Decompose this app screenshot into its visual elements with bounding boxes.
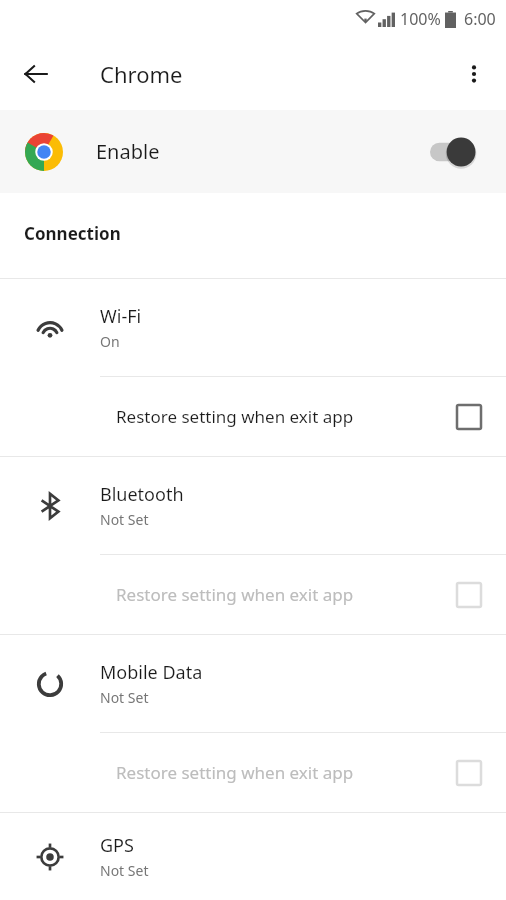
button[interactable]: Mobile Data — [0, 635, 506, 732]
staticText: Restore setting when exit app — [116, 761, 354, 784]
staticText: On — [100, 332, 120, 351]
staticText: Connection — [24, 222, 121, 245]
button[interactable]: Restore setting when exit app — [0, 733, 506, 812]
staticText: Restore setting when exit app — [116, 583, 354, 606]
staticText: Mobile Data — [100, 660, 203, 685]
button[interactable]: More options — [450, 50, 498, 98]
staticText: Enable — [96, 138, 160, 165]
button[interactable]: Bluetooth — [0, 457, 506, 554]
button[interactable]: Enable — [0, 110, 506, 193]
button[interactable]: Wi-Fi — [0, 279, 506, 376]
staticText: 100% — [400, 8, 441, 30]
staticText: Not Set — [100, 688, 149, 707]
staticText: Wi-Fi — [100, 304, 142, 329]
button[interactable]: Back — [10, 48, 62, 100]
staticText: Chrome — [100, 59, 183, 89]
staticText: GPS — [100, 833, 134, 858]
staticText: 6:00 — [464, 8, 496, 30]
staticText: Not Set — [100, 861, 149, 880]
button[interactable]: Restore setting when exit app — [0, 555, 506, 634]
staticText: Restore setting when exit app — [116, 405, 354, 428]
button[interactable]: Restore setting when exit app — [0, 377, 506, 456]
staticText: Not Set — [100, 510, 149, 529]
staticText: Bluetooth — [100, 482, 184, 507]
button[interactable]: GPS — [0, 813, 506, 900]
